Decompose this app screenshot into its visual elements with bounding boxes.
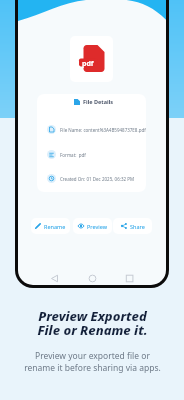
staticText: Rename [44, 223, 66, 230]
staticText: Share [130, 223, 145, 230]
button[interactable]: Rename [31, 218, 70, 234]
staticText: Format: pdf [60, 152, 86, 158]
staticText: File Name: content%3A4B5948737E8.pdf [60, 127, 146, 133]
staticText: Created On: 01 Dec 2025, 06:32 PM [60, 176, 135, 182]
staticText: pdf [82, 59, 94, 69]
staticText: File Details [83, 98, 114, 105]
button[interactable]: Preview [73, 218, 112, 234]
button[interactable]: Share [113, 218, 152, 234]
staticText: Preview your exported file or rename it … [24, 350, 161, 374]
staticText: Preview Exported File or Rename it. [37, 307, 148, 339]
other: System navigation bar [18, 0, 166, 285]
staticText: Preview [87, 223, 108, 230]
